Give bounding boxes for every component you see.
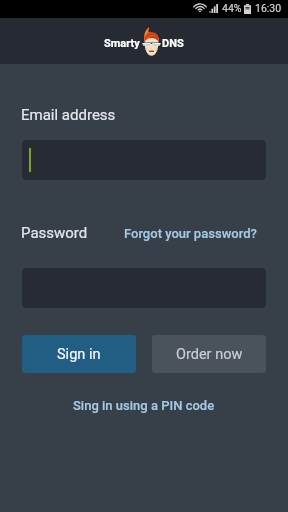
- staticText: Email address: [21, 106, 116, 124]
- staticText: 16:30: [255, 2, 282, 14]
- button[interactable]: Sign in: [22, 335, 136, 373]
- button[interactable]: [22, 140, 266, 180]
- button[interactable]: Sing in using a PIN code: [73, 398, 215, 413]
- staticText: Password: [21, 224, 88, 242]
- button[interactable]: Order now: [152, 335, 266, 373]
- staticText: Order now: [176, 346, 243, 363]
- staticText: Forgot your password?: [124, 226, 257, 241]
- staticText: 44%: [222, 2, 242, 14]
- staticText: DNS: [162, 37, 184, 50]
- button[interactable]: Forgot your password?: [124, 226, 257, 241]
- staticText: Smarty: [104, 37, 140, 50]
- staticText: Sing in using a PIN code: [73, 398, 215, 413]
- staticText: Sign in: [57, 346, 101, 363]
